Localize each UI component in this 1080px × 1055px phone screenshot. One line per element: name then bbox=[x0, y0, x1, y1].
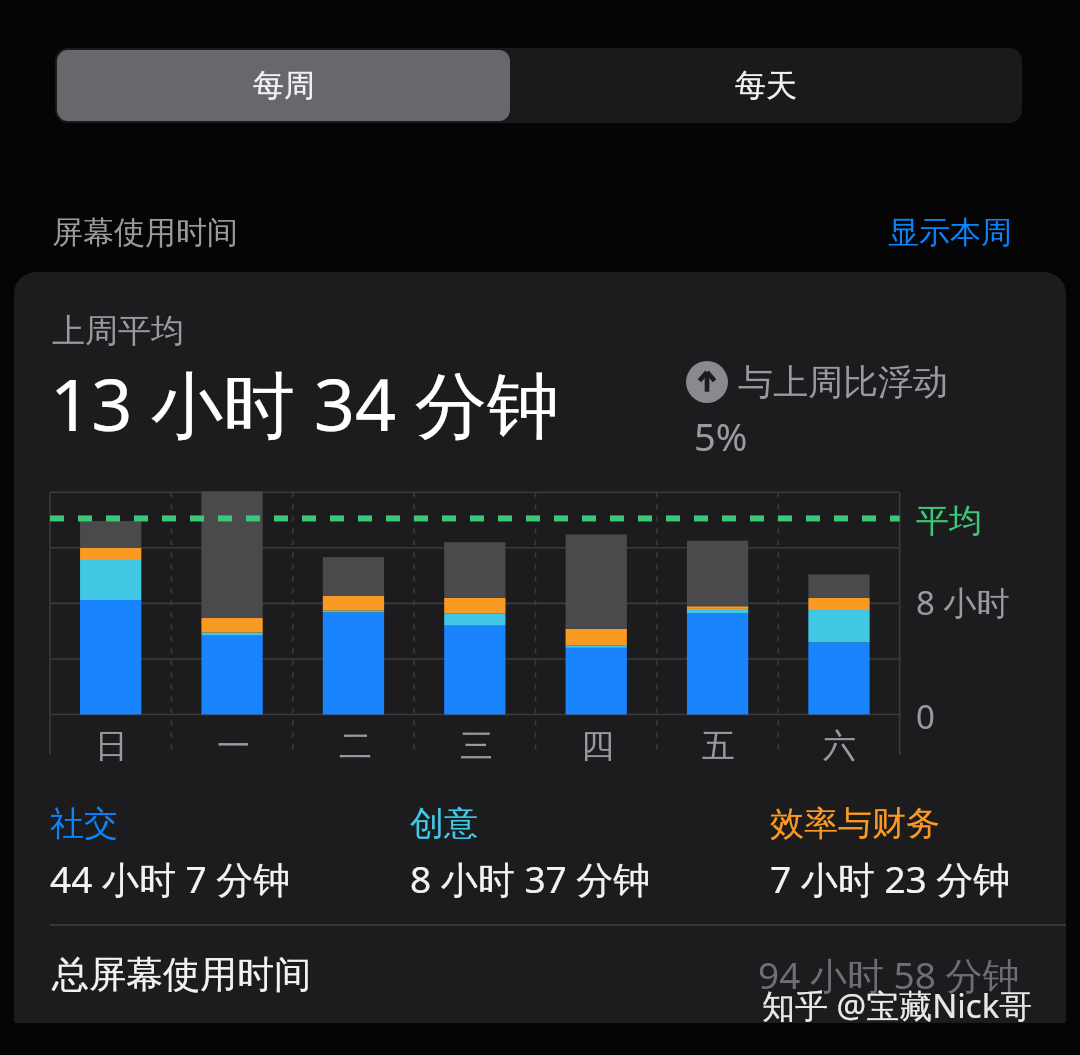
staticText: 5% bbox=[694, 410, 748, 462]
staticText: 二 bbox=[339, 725, 372, 767]
staticText: 六 bbox=[823, 725, 856, 767]
staticText: 0 bbox=[916, 694, 935, 739]
staticText: 社交 bbox=[50, 802, 118, 845]
staticText: 创意 bbox=[410, 802, 478, 845]
button[interactable]: 创意 bbox=[410, 802, 651, 904]
staticText: 44 小时 7 分钟 bbox=[50, 853, 291, 904]
button[interactable]: 显示本周 bbox=[888, 213, 1012, 252]
staticText: 效率与财务 bbox=[770, 802, 940, 845]
staticText: 五 bbox=[702, 725, 735, 767]
staticText: 知乎 @宝藏Nick哥 bbox=[762, 983, 1033, 1028]
button[interactable]: 每周 bbox=[57, 50, 510, 121]
button[interactable]: 上周平均 bbox=[14, 272, 1066, 1023]
staticText: 日 bbox=[95, 725, 128, 767]
staticText: 平均 bbox=[916, 500, 982, 542]
staticText: 每周 bbox=[253, 66, 315, 105]
staticText: 屏幕使用时间 bbox=[52, 213, 238, 252]
staticText: 7 小时 23 分钟 bbox=[770, 853, 1011, 904]
staticText: 上周平均 bbox=[52, 310, 184, 352]
staticText: 94 小时 58 分钟 bbox=[758, 949, 1020, 1000]
staticText: 13 小时 34 分钟 bbox=[50, 354, 559, 452]
button[interactable]: 社交 bbox=[50, 802, 291, 904]
staticText: 与上周比浮动 bbox=[738, 360, 948, 404]
staticText: 一 bbox=[217, 725, 250, 767]
button[interactable]: 每天 bbox=[512, 50, 1020, 121]
staticText: 每天 bbox=[735, 66, 797, 105]
staticText: 三 bbox=[460, 725, 493, 767]
staticText: 总屏幕使用时间 bbox=[52, 951, 311, 998]
staticText: 显示本周 bbox=[888, 213, 1012, 252]
staticText: 8 小时 37 分钟 bbox=[410, 853, 651, 904]
button[interactable]: 总屏幕使用时间 bbox=[14, 926, 1066, 1023]
staticText: 8 小时 bbox=[916, 580, 1010, 625]
staticText: 四 bbox=[581, 725, 614, 767]
button[interactable]: 效率与财务 bbox=[770, 802, 1011, 904]
